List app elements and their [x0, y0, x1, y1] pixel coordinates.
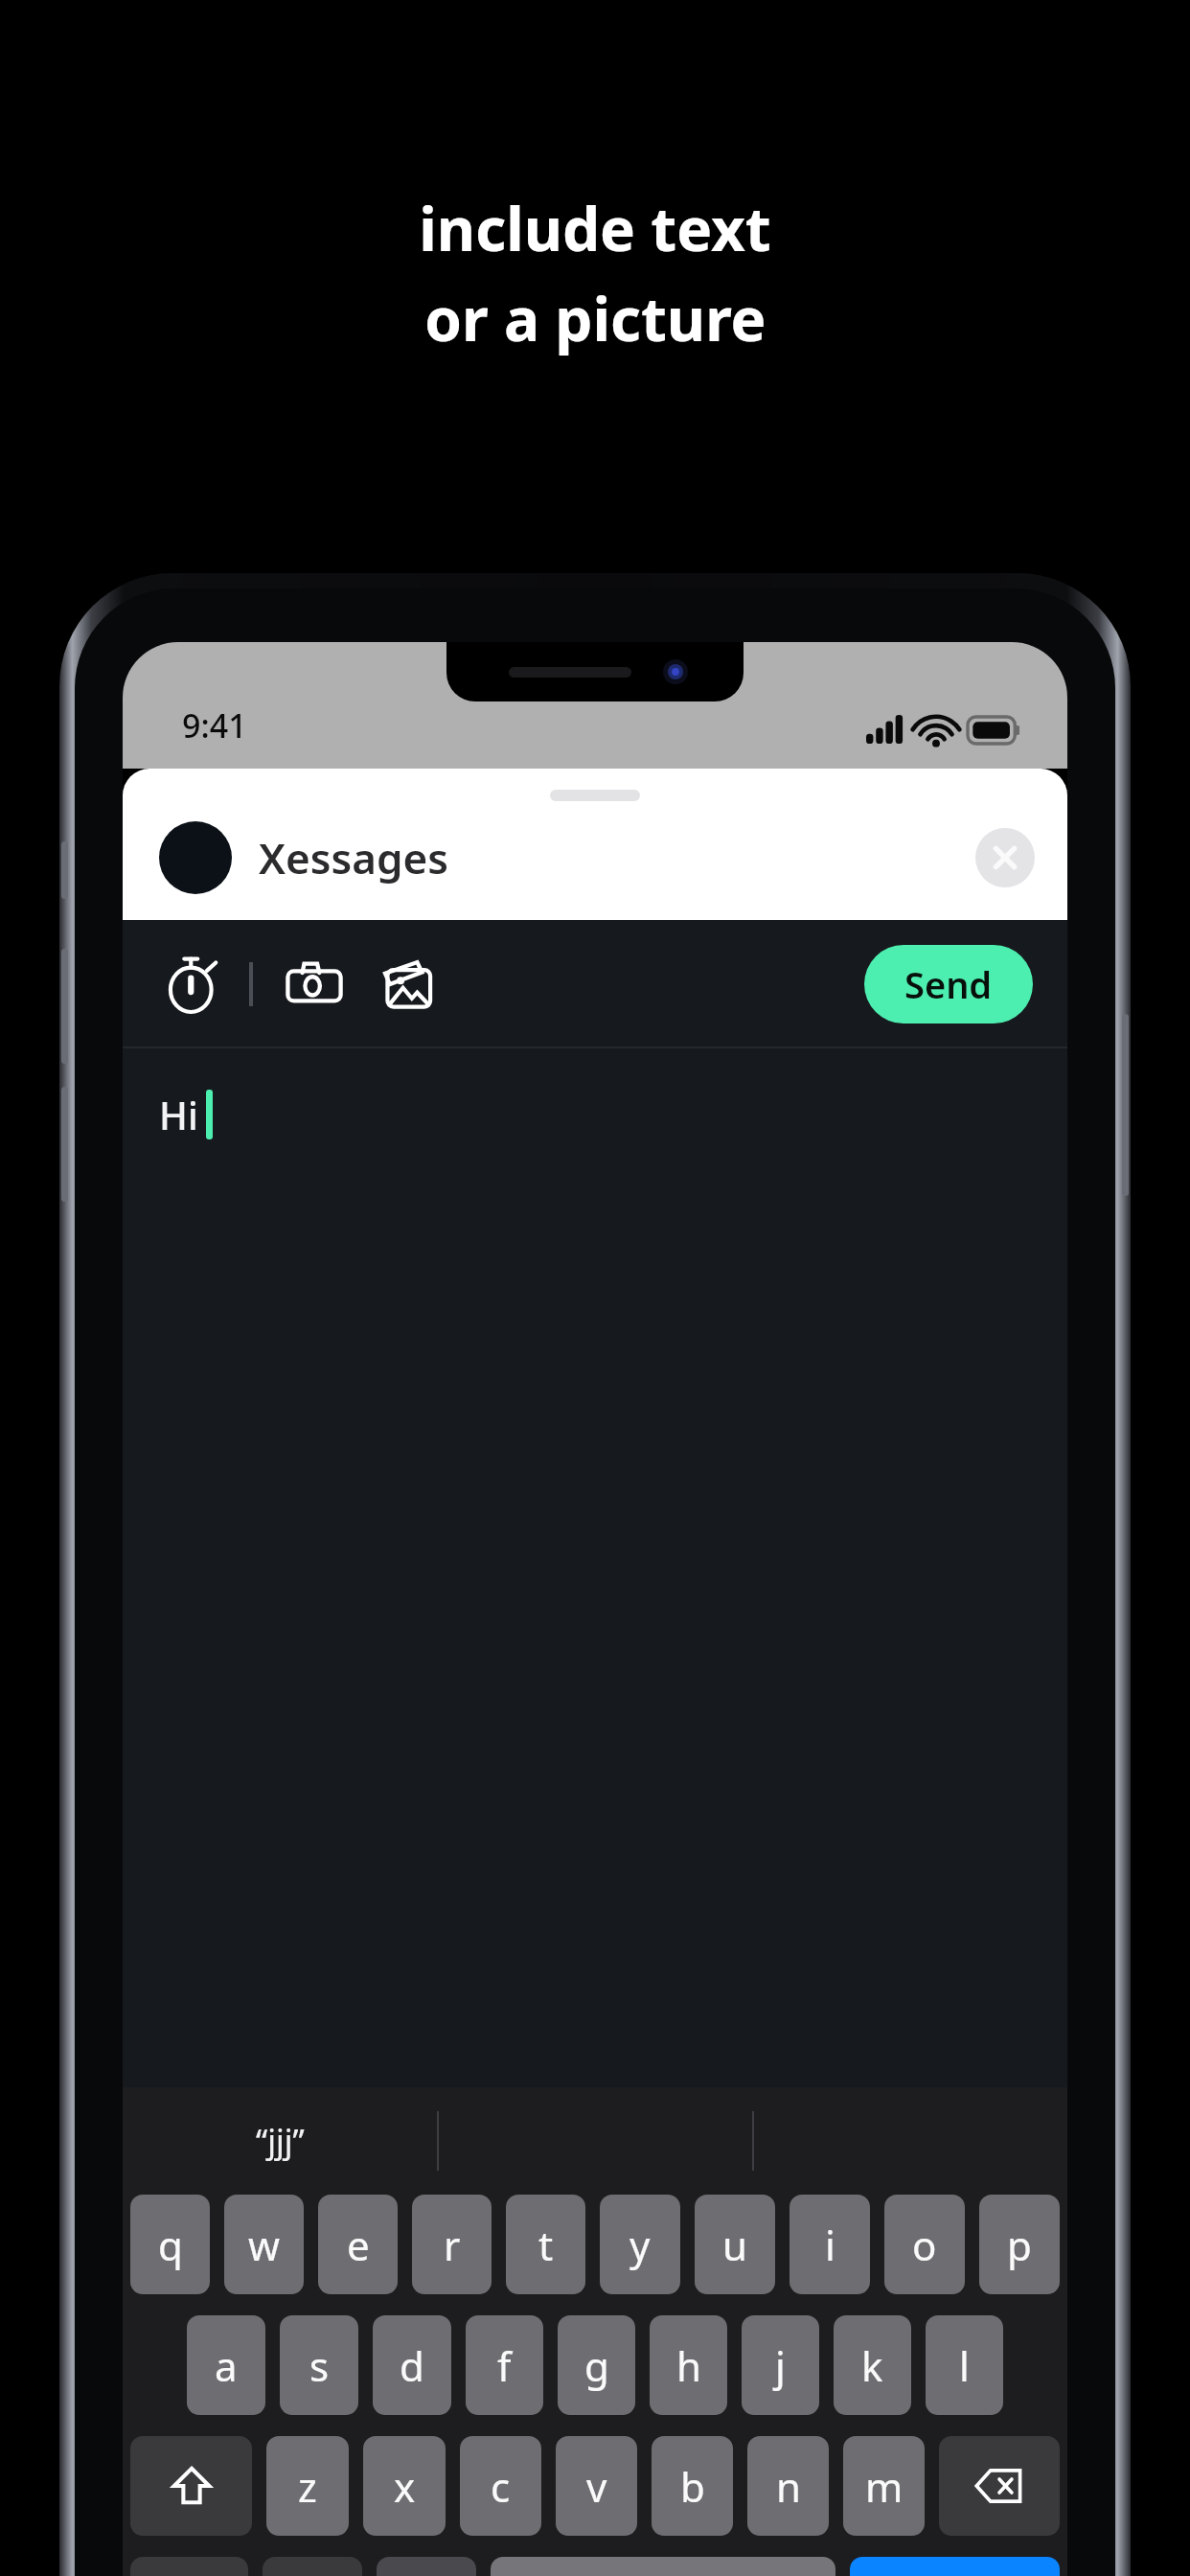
- staticText: z: [298, 2459, 317, 2514]
- staticText: k: [861, 2338, 883, 2393]
- staticText: h: [676, 2338, 701, 2393]
- staticText: j: [775, 2338, 786, 2393]
- staticText: q: [158, 2218, 183, 2272]
- staticText: y: [629, 2218, 651, 2272]
- button[interactable]: w: [224, 2195, 304, 2294]
- button[interactable]: t: [506, 2195, 585, 2294]
- staticText: i: [825, 2218, 835, 2272]
- button[interactable]: Photos: [374, 948, 446, 1021]
- staticText: b: [680, 2459, 705, 2514]
- button[interactable]: f: [466, 2315, 543, 2415]
- button[interactable]: v: [556, 2436, 637, 2536]
- staticText: e: [347, 2218, 370, 2272]
- button[interactable]: Timer: [157, 949, 228, 1020]
- staticText: w: [248, 2218, 281, 2272]
- staticText: or a picture: [424, 278, 767, 358]
- button[interactable]: a: [187, 2315, 265, 2415]
- button[interactable]: b: [652, 2436, 733, 2536]
- button[interactable]: q: [130, 2195, 210, 2294]
- staticText: g: [584, 2338, 609, 2393]
- button[interactable]: n: [747, 2436, 829, 2536]
- button[interactable]: l: [926, 2315, 1003, 2415]
- button[interactable]: c: [460, 2436, 541, 2536]
- staticText: u: [722, 2218, 747, 2272]
- staticText: r: [444, 2218, 461, 2272]
- staticText: Xessages: [259, 829, 448, 886]
- staticText: n: [776, 2459, 801, 2514]
- staticText: s: [309, 2338, 330, 2393]
- button[interactable]: Camera: [278, 948, 351, 1021]
- staticText: p: [1007, 2218, 1032, 2272]
- staticText: t: [538, 2218, 554, 2272]
- button[interactable]: d: [373, 2315, 451, 2415]
- button[interactable]: m: [843, 2436, 925, 2536]
- button[interactable]: i: [790, 2195, 870, 2294]
- button[interactable]: g: [558, 2315, 635, 2415]
- button[interactable]: z: [266, 2436, 349, 2536]
- button[interactable]: Shift: [130, 2436, 252, 2536]
- button[interactable]: u: [695, 2195, 775, 2294]
- staticText: a: [215, 2338, 238, 2393]
- button[interactable]: o: [884, 2195, 965, 2294]
- button[interactable]: r: [412, 2195, 492, 2294]
- button[interactable]: j: [742, 2315, 819, 2415]
- button[interactable]: h: [650, 2315, 727, 2415]
- staticText: include text: [419, 188, 771, 268]
- staticText: f: [497, 2338, 512, 2393]
- button[interactable]: [159, 821, 232, 894]
- staticText: d: [400, 2338, 424, 2393]
- button[interactable]: y: [600, 2195, 680, 2294]
- button[interactable]: Close: [975, 828, 1035, 887]
- button[interactable]: Send: [850, 2557, 1060, 2576]
- staticText: m: [865, 2459, 904, 2514]
- button[interactable]: 123: [130, 2557, 248, 2576]
- button[interactable]: Backspace: [939, 2436, 1060, 2536]
- button[interactable]: Send: [864, 945, 1033, 1023]
- button[interactable]: “jjj”: [123, 2087, 437, 2195]
- staticText: 9:41: [182, 703, 247, 747]
- button[interactable]: s: [280, 2315, 358, 2415]
- button[interactable]: x: [363, 2436, 446, 2536]
- staticText: v: [586, 2459, 607, 2514]
- staticText: l: [959, 2338, 970, 2393]
- button[interactable]: Emoji: [263, 2557, 362, 2576]
- staticText: o: [912, 2218, 937, 2272]
- staticText: Send: [904, 959, 993, 1009]
- button[interactable]: space: [491, 2557, 835, 2576]
- button[interactable]: p: [979, 2195, 1060, 2294]
- button[interactable]: Dictation: [377, 2557, 476, 2576]
- staticText: “jjj”: [256, 2119, 305, 2163]
- button[interactable]: k: [834, 2315, 911, 2415]
- staticText: Hi: [159, 1089, 198, 1140]
- button[interactable]: e: [318, 2195, 398, 2294]
- staticText: x: [394, 2459, 416, 2514]
- staticText: c: [491, 2459, 511, 2514]
